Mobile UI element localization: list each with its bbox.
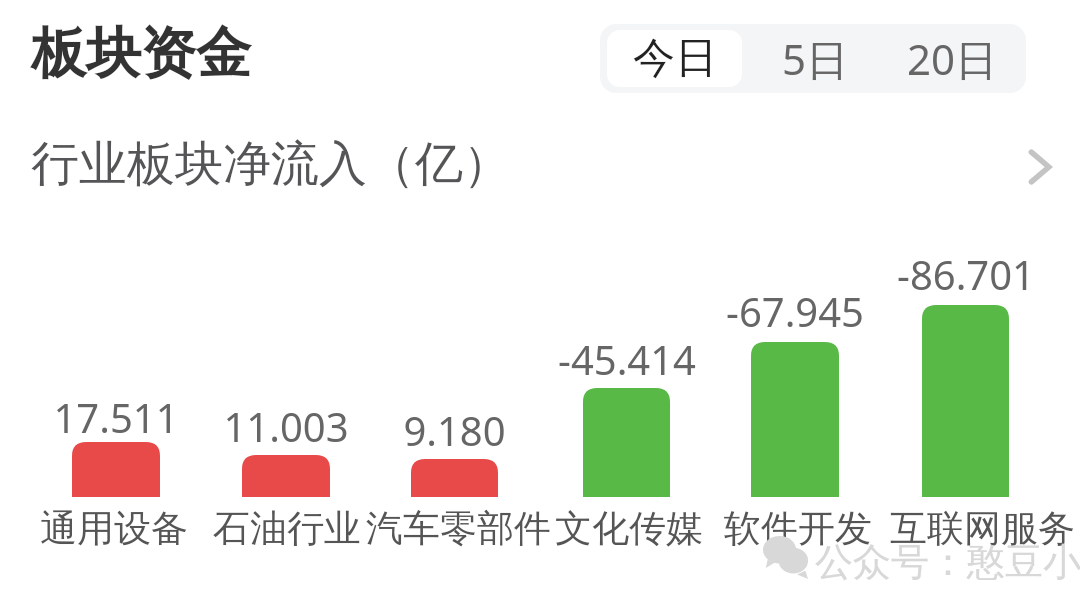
- staticText: 行业板块净流入（亿）: [31, 134, 511, 194]
- button[interactable]: 行业板块净流入（亿）: [0, 128, 1080, 204]
- staticText: 板块资金: [31, 19, 251, 88]
- staticText: 今日: [633, 32, 717, 85]
- staticText: 汽车零部件: [366, 505, 551, 552]
- staticText: 通用设备: [40, 505, 188, 552]
- button[interactable]: -67.945: [717, 284, 873, 555]
- button[interactable]: 20日: [883, 30, 1021, 87]
- button[interactable]: -45.414: [549, 332, 704, 555]
- staticText: 5日: [782, 30, 849, 87]
- other: 查看更多: [1026, 145, 1056, 189]
- staticText: 文化传媒: [555, 505, 703, 552]
- staticText: -67.945: [726, 284, 864, 338]
- staticText: -86.701: [897, 247, 1035, 301]
- staticText: 20日: [907, 30, 998, 87]
- button[interactable]: -86.701: [888, 247, 1043, 555]
- staticText: 石油行业: [213, 505, 361, 552]
- button[interactable]: 5日: [750, 30, 880, 87]
- button[interactable]: 11.003: [208, 399, 364, 555]
- staticText: 互联网服务: [890, 505, 1075, 552]
- staticText: 公众号：憨豆小栗: [815, 538, 1080, 586]
- staticText: 11.003: [223, 399, 349, 453]
- button[interactable]: 9.180: [377, 403, 532, 555]
- staticText: 9.180: [403, 403, 506, 457]
- staticText: 软件开发: [724, 505, 872, 552]
- staticText: 17.511: [53, 390, 179, 442]
- button[interactable]: 今日: [607, 30, 742, 87]
- button[interactable]: 17.511: [38, 390, 194, 555]
- staticText: -45.414: [558, 332, 696, 386]
